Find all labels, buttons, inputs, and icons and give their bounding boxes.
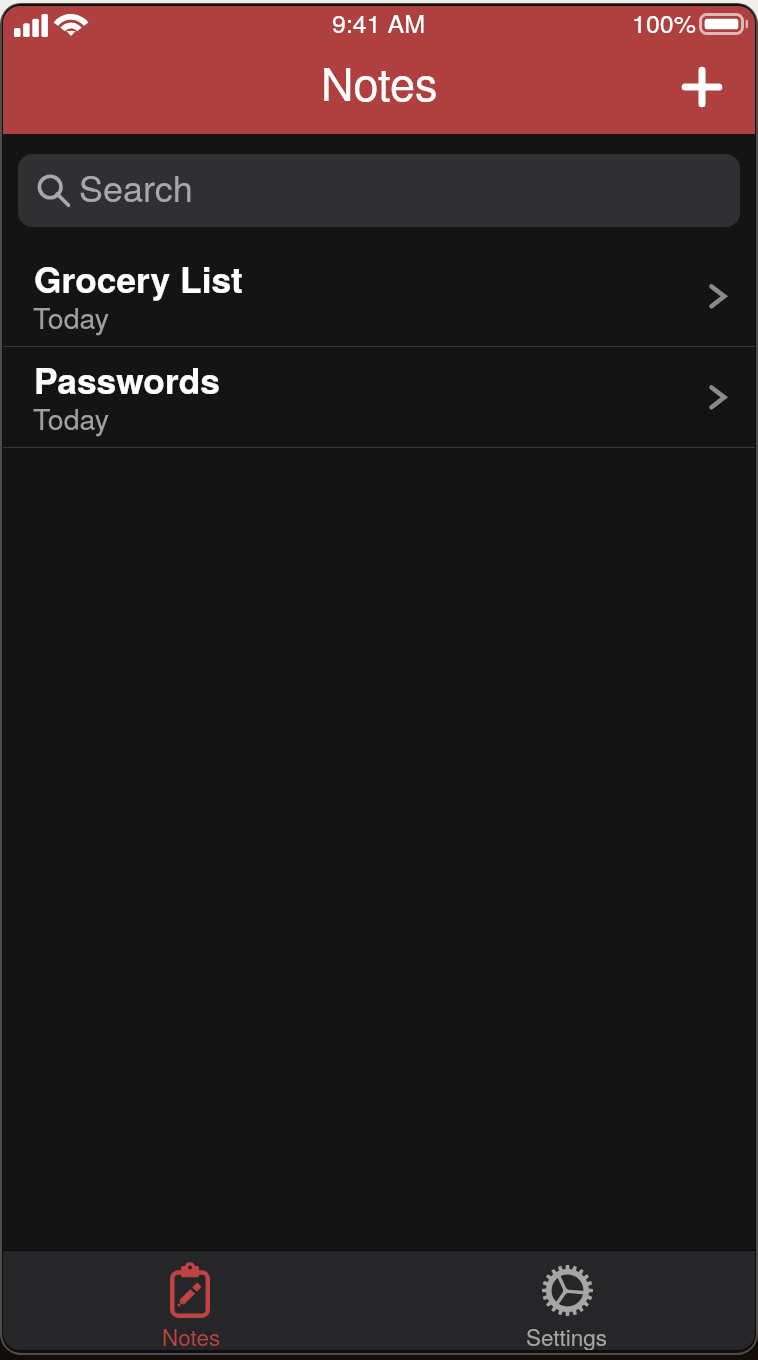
button[interactable]: Passwords bbox=[3, 347, 755, 447]
staticText: Grocery List bbox=[34, 253, 243, 304]
staticText: 9:41 AM bbox=[332, 6, 426, 40]
staticText: Notes bbox=[162, 1320, 221, 1350]
staticText: Today bbox=[33, 397, 109, 438]
staticText: Today bbox=[33, 296, 109, 337]
staticText: Notes bbox=[321, 49, 438, 113]
staticText: 100% bbox=[632, 6, 696, 40]
button[interactable]: Settings bbox=[379, 1251, 755, 1350]
button[interactable]: Search bbox=[18, 154, 740, 227]
button[interactable]: Notes bbox=[3, 1251, 379, 1350]
button[interactable]: Add note bbox=[670, 55, 734, 119]
staticText: Passwords bbox=[34, 354, 220, 405]
staticText: Search bbox=[79, 161, 193, 213]
button[interactable]: Grocery List bbox=[3, 246, 755, 346]
staticText: Settings bbox=[526, 1320, 608, 1350]
